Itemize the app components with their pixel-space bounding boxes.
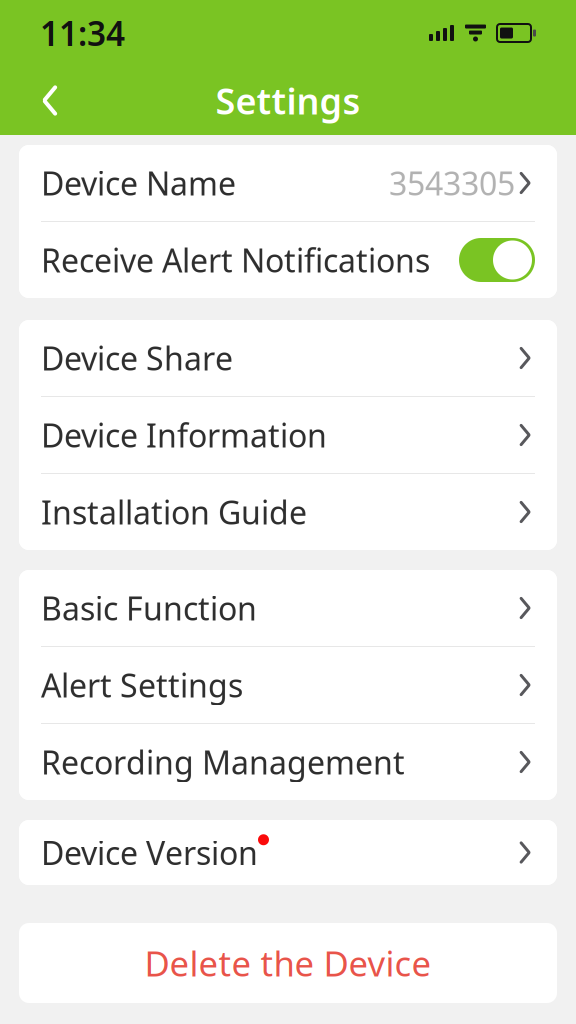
button[interactable]: Device Share: [19, 320, 557, 396]
button[interactable]: Receive Alert Notifications toggle, on: [459, 238, 535, 282]
staticText: Installation Guide: [41, 491, 307, 533]
staticText: Receive Alert Notifications: [41, 239, 430, 281]
button[interactable]: Device Information: [19, 397, 557, 473]
button[interactable]: Receive Alert Notifications: [19, 222, 557, 298]
staticText: Settings: [215, 77, 360, 124]
button[interactable]: Alert Settings: [19, 647, 557, 723]
staticText: Device Version: [41, 831, 258, 874]
staticText: 3543305: [389, 162, 515, 204]
staticText: 11:34: [40, 11, 125, 55]
staticText: Recording Management: [41, 741, 405, 783]
staticText: Delete the Device: [144, 940, 431, 986]
button[interactable]: Back: [22, 72, 78, 128]
staticText: Basic Function: [41, 587, 257, 629]
staticText: Alert Settings: [41, 664, 243, 706]
button[interactable]: Device Version: [19, 820, 557, 885]
staticText: Device Name: [41, 162, 236, 204]
staticText: Device Information: [41, 414, 327, 456]
button[interactable]: Recording Management: [19, 724, 557, 800]
button[interactable]: Installation Guide: [19, 474, 557, 550]
staticText: Device Share: [41, 337, 233, 379]
button[interactable]: Delete the Device: [19, 923, 557, 1003]
button[interactable]: Device Name: [19, 145, 557, 221]
button[interactable]: Basic Function: [19, 570, 557, 646]
